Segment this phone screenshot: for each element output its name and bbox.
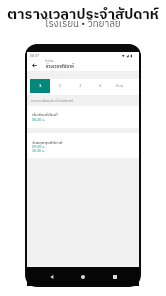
staticText: 1 xyxy=(39,83,42,90)
button[interactable]: 1 xyxy=(30,79,50,93)
staticText: ตารางเวลาประจำสัปดาห์ xyxy=(7,3,159,27)
button[interactable]: 2 xyxy=(50,79,70,93)
staticText: 10:30 น. xyxy=(32,148,45,154)
staticText: 09:30 น. xyxy=(32,144,45,150)
staticText: 3 xyxy=(79,83,82,90)
button[interactable]: Recents xyxy=(108,270,122,284)
button[interactable]: เริ่มเรียนชั่วโมงที่ xyxy=(27,106,139,128)
button[interactable]: Back xyxy=(45,270,59,284)
staticText: 2 xyxy=(59,83,62,90)
staticText: โรงเรียน xyxy=(45,59,54,63)
staticText: วันหยุดสุดสัปดาห์ xyxy=(32,139,63,146)
staticText: ตารางเรียนประจำวันจันทร์ xyxy=(31,98,74,104)
button[interactable]: Home xyxy=(76,270,90,284)
button[interactable]: 3 xyxy=(70,79,90,93)
button[interactable]: Back xyxy=(30,61,38,69)
button[interactable]: อื่นๆ xyxy=(110,79,130,93)
staticText: โรงเรียน • วิทยาลัย xyxy=(45,16,121,32)
staticText: อื่นๆ xyxy=(116,83,124,90)
staticText: เริ่มเรียนชั่วโมงที่ xyxy=(32,112,58,118)
button[interactable]: วันหยุดสุดสัปดาห์ xyxy=(27,133,139,158)
button[interactable]: 4 xyxy=(90,79,110,93)
staticText: 08:30 น. xyxy=(32,117,45,123)
staticText: 08:37 xyxy=(30,53,40,59)
staticText: 4 xyxy=(99,83,102,90)
staticText: ช่วงเวลาสัปดาห์ xyxy=(46,63,74,70)
